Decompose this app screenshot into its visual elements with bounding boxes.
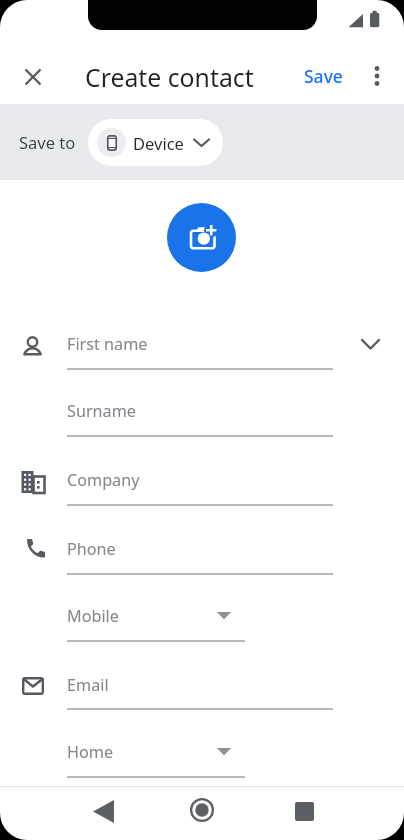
staticText: Save to [19, 131, 76, 153]
staticText: Company [67, 469, 140, 491]
button[interactable]: Home [67, 732, 245, 772]
staticText: Phone [67, 538, 116, 560]
button[interactable]: Save [294, 58, 352, 94]
staticText: First name [67, 333, 148, 355]
staticText: Save [304, 64, 343, 88]
button[interactable]: Mobile [67, 596, 245, 636]
button[interactable] [362, 58, 392, 94]
button[interactable] [81, 793, 125, 829]
button[interactable] [282, 793, 326, 829]
staticText: Create contact [85, 60, 254, 94]
button[interactable]: Device [88, 119, 223, 166]
button[interactable] [167, 203, 236, 272]
staticText: Email [67, 674, 109, 696]
staticText: Home [67, 741, 114, 763]
button[interactable] [352, 326, 388, 362]
staticText: Mobile [67, 605, 119, 627]
button[interactable] [16, 60, 50, 94]
button[interactable] [180, 793, 224, 829]
staticText: Device [133, 132, 184, 154]
staticText: Surname [67, 400, 136, 422]
